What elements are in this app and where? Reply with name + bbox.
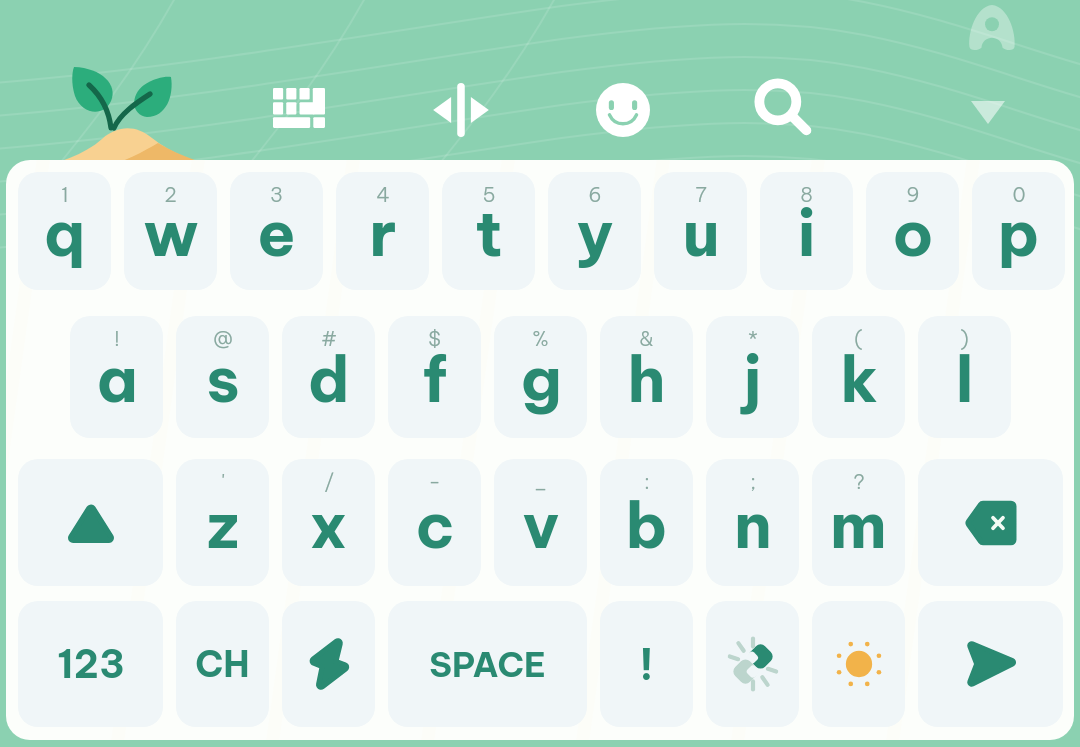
button[interactable]: * — [706, 316, 799, 438]
button[interactable]: # — [282, 316, 375, 438]
button[interactable]: Send — [918, 601, 1063, 727]
button[interactable]: 6 — [548, 172, 641, 290]
staticText: c — [415, 485, 455, 565]
staticText: _ — [533, 469, 548, 494]
button[interactable]: & — [600, 316, 693, 438]
button[interactable]: Quick action — [282, 601, 375, 727]
button[interactable]: - — [388, 459, 481, 586]
button[interactable]: 4 — [336, 172, 429, 290]
staticText: 0 — [1012, 182, 1026, 207]
staticText: / — [324, 469, 334, 494]
button[interactable]: Keyboard layout — [258, 73, 340, 143]
button[interactable]: 123 — [18, 601, 163, 727]
staticText: & — [639, 326, 654, 351]
staticText: ) — [960, 326, 969, 351]
button[interactable]: CH — [176, 601, 269, 727]
staticText: e — [257, 193, 296, 273]
staticText: q — [43, 193, 86, 273]
button[interactable]: 9 — [866, 172, 959, 290]
staticText: h — [627, 339, 666, 419]
button[interactable]: Sprout theme — [44, 65, 224, 165]
staticText: g — [520, 339, 562, 419]
button[interactable]: ! — [600, 601, 693, 727]
staticText: # — [321, 326, 337, 351]
staticText: 4 — [376, 182, 390, 207]
button[interactable]: ' — [176, 459, 269, 586]
staticText: s — [206, 339, 240, 419]
staticText: 5 — [482, 182, 496, 207]
staticText: 8 — [800, 182, 813, 207]
staticText: 123 — [57, 640, 125, 688]
button[interactable]: Backspace — [918, 459, 1063, 586]
staticText: b — [625, 485, 668, 565]
button[interactable]: 5 — [442, 172, 535, 290]
staticText: ? — [853, 469, 865, 494]
button[interactable]: Clipboard — [706, 601, 799, 727]
button[interactable]: 2 — [124, 172, 217, 290]
staticText: x — [309, 485, 348, 565]
staticText: z — [206, 485, 239, 565]
button[interactable]: SPACE — [388, 601, 587, 727]
staticText: d — [307, 339, 350, 419]
staticText: - — [428, 469, 441, 494]
button[interactable]: 3 — [230, 172, 323, 290]
staticText: n — [734, 485, 772, 565]
staticText: SPACE — [429, 643, 546, 686]
button[interactable]: @ — [176, 316, 269, 438]
button[interactable]: ? — [812, 459, 905, 586]
staticText: u — [682, 193, 720, 273]
staticText: i — [797, 193, 816, 273]
staticText: ; — [750, 469, 756, 494]
button[interactable]: _ — [494, 459, 587, 586]
button[interactable]: App logo — [956, 0, 1028, 58]
button[interactable]: / — [282, 459, 375, 586]
staticText: ! — [639, 638, 654, 691]
staticText: ' — [221, 469, 225, 494]
staticText: 9 — [906, 182, 920, 207]
button[interactable]: $ — [388, 316, 481, 438]
button[interactable]: ( — [812, 316, 905, 438]
staticText: f — [422, 339, 448, 419]
staticText: * — [748, 326, 758, 351]
button[interactable]: Shift — [18, 459, 163, 586]
button[interactable]: ! — [70, 316, 163, 438]
staticText: r — [369, 193, 397, 273]
staticText: 3 — [270, 182, 283, 207]
staticText: v — [522, 485, 560, 565]
staticText: ! — [114, 326, 120, 351]
button[interactable]: 8 — [760, 172, 853, 290]
button[interactable]: ; — [706, 459, 799, 586]
staticText: ( — [854, 326, 863, 351]
staticText: j — [743, 339, 762, 419]
button[interactable]: 1 — [18, 172, 111, 290]
staticText: l — [955, 339, 974, 419]
staticText: p — [997, 193, 1040, 273]
button[interactable]: % — [494, 316, 587, 438]
button[interactable]: Brightness — [812, 601, 905, 727]
button[interactable]: Hide keyboard — [952, 84, 1024, 140]
button[interactable]: 0 — [972, 172, 1065, 290]
staticText: 6 — [588, 182, 602, 207]
button[interactable]: Emoji — [580, 67, 666, 153]
staticText: 1 — [61, 182, 69, 207]
staticText: $ — [428, 326, 441, 351]
button[interactable]: Move cursor — [416, 67, 506, 153]
staticText: o — [892, 193, 934, 273]
button[interactable]: 7 — [654, 172, 747, 290]
staticText: y — [576, 193, 614, 273]
staticText: CH — [195, 641, 250, 687]
staticText: 2 — [164, 182, 177, 207]
staticText: 7 — [695, 182, 707, 207]
staticText: a — [96, 339, 138, 419]
button[interactable]: Search — [738, 62, 830, 154]
button[interactable]: : — [600, 459, 693, 586]
staticText: m — [830, 485, 887, 565]
staticText: : — [644, 469, 650, 494]
staticText: t — [475, 193, 503, 273]
staticText: @ — [213, 326, 233, 351]
staticText: % — [532, 326, 549, 351]
staticText: k — [840, 339, 878, 419]
staticText: w — [143, 193, 199, 273]
button[interactable]: ) — [918, 316, 1011, 438]
